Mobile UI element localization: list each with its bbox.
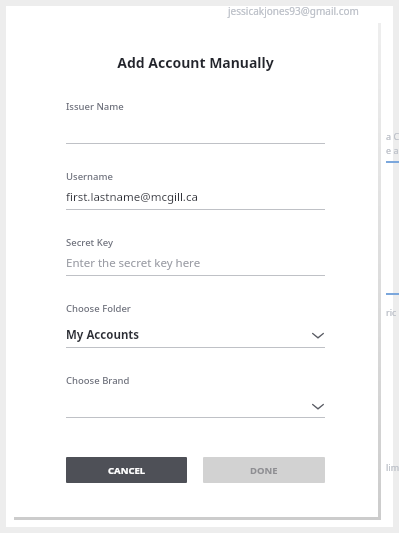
staticText: e a bbox=[386, 144, 399, 156]
staticText: Username bbox=[66, 170, 113, 183]
staticText: DONE bbox=[250, 464, 278, 477]
staticText: ric bbox=[386, 306, 397, 318]
staticText: lim bbox=[386, 461, 399, 473]
staticText: Issuer Name bbox=[66, 100, 124, 113]
staticText: My Accounts bbox=[66, 327, 140, 343]
staticText: a C bbox=[386, 130, 399, 142]
button[interactable]: Username bbox=[66, 170, 325, 210]
staticText: first.lastname@mcgill.ca bbox=[66, 189, 198, 205]
button[interactable]: DONE bbox=[203, 457, 325, 483]
staticText: Secret Key bbox=[66, 236, 114, 249]
staticText: jessicakjones93@gmail.com bbox=[228, 4, 359, 18]
button[interactable]: CANCEL bbox=[66, 457, 187, 483]
button[interactable]: Choose Folder bbox=[66, 302, 325, 348]
button[interactable]: Secret Key bbox=[66, 236, 325, 276]
staticText: Choose Brand bbox=[66, 374, 130, 387]
button[interactable]: Choose Brand bbox=[66, 374, 325, 418]
staticText: Add Account Manually bbox=[41, 53, 350, 72]
staticText: CANCEL bbox=[108, 464, 146, 477]
staticText: Choose Folder bbox=[66, 302, 131, 315]
button[interactable]: Issuer Name bbox=[66, 100, 325, 144]
staticText: Enter the secret key here bbox=[66, 255, 201, 271]
